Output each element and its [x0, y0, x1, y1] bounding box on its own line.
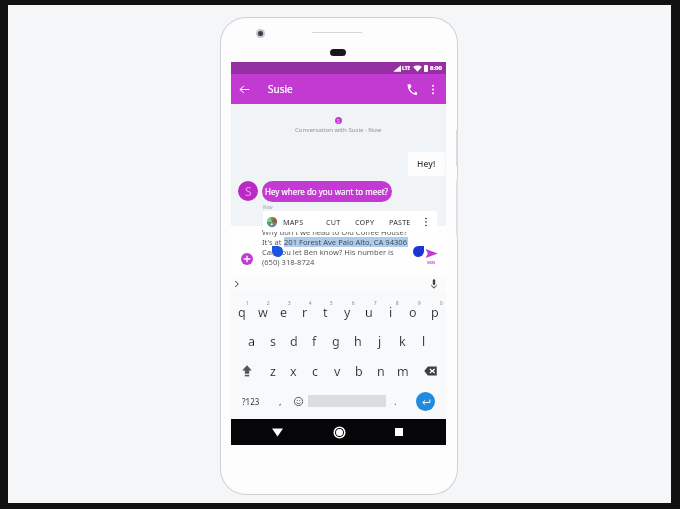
button[interactable]: Send SMS — [422, 248, 439, 268]
button[interactable]: ?123 — [231, 386, 271, 416]
button[interactable]: a — [241, 326, 262, 356]
button[interactable]: m — [392, 356, 414, 386]
staticText: 5 — [330, 300, 333, 306]
staticText: 9 — [418, 300, 421, 306]
staticText: l — [422, 333, 426, 350]
staticText: n — [377, 363, 385, 380]
staticText: f — [312, 333, 317, 350]
button[interactable]: . — [386, 386, 405, 416]
staticText: Hey where do you want to meet? — [265, 186, 389, 197]
button[interactable]: n — [370, 356, 392, 386]
staticText: 1 — [246, 300, 249, 306]
button[interactable]: COPY — [352, 211, 378, 232]
staticText: a — [248, 333, 256, 350]
button[interactable]: 2 — [252, 297, 273, 326]
button[interactable]: 0 — [424, 297, 446, 326]
staticText: S — [245, 183, 252, 199]
staticText: j — [378, 333, 382, 350]
staticText: t — [323, 304, 328, 321]
button[interactable]: , — [271, 386, 289, 416]
staticText: m — [397, 363, 409, 380]
button[interactable]: Enter — [405, 386, 446, 416]
staticText: Now — [263, 204, 273, 210]
button[interactable]: Backspace — [414, 356, 446, 386]
button[interactable]: Back — [231, 76, 257, 102]
button[interactable]: s — [262, 326, 283, 356]
button[interactable]: l — [413, 326, 435, 356]
staticText: MAPS — [283, 217, 304, 227]
button[interactable]: Home — [326, 419, 352, 445]
staticText: Conversation with Susie · Now — [295, 125, 382, 133]
staticText: d — [290, 333, 298, 350]
button[interactable]: Attach — [241, 253, 253, 265]
staticText: 7 — [374, 300, 377, 306]
button[interactable]: g — [325, 326, 347, 356]
button[interactable]: x — [283, 356, 304, 386]
staticText: o — [409, 304, 417, 321]
button[interactable]: 3 — [273, 297, 294, 326]
button[interactable]: Hey where do you want to meet? — [262, 181, 392, 202]
button[interactable]: 9 — [402, 297, 424, 326]
staticText: (650) 318-8724 — [262, 257, 315, 267]
staticText: q — [238, 304, 246, 321]
button[interactable]: z — [262, 356, 283, 386]
button[interactable]: Recents — [386, 419, 412, 445]
button[interactable]: Emoji — [289, 386, 308, 416]
staticText: LTE — [402, 65, 411, 72]
button[interactable]: 4 — [294, 297, 315, 326]
staticText: e — [280, 304, 288, 321]
staticText: u — [365, 304, 373, 321]
staticText: h — [354, 333, 362, 350]
staticText: 8 — [396, 300, 399, 306]
button[interactable]: b — [348, 356, 370, 386]
button[interactable]: 5 — [315, 297, 336, 326]
button[interactable]: j — [369, 326, 391, 356]
button[interactable]: h — [347, 326, 369, 356]
button[interactable]: More options — [423, 79, 443, 99]
button[interactable]: More options — [418, 214, 434, 230]
button[interactable]: 8 — [380, 297, 402, 326]
staticText: 201 Forest Ave Palo Alto, CA 94306 — [284, 237, 408, 247]
staticText: i — [389, 304, 393, 321]
staticText: Why don't we head to Old Coffee House? — [262, 227, 408, 237]
staticText: 4 — [309, 300, 312, 306]
staticText: 2 — [267, 300, 270, 306]
staticText: Hey! — [417, 158, 436, 170]
staticText: 0 — [440, 300, 443, 306]
button[interactable]: v — [326, 356, 348, 386]
staticText: CUT — [326, 217, 341, 227]
button[interactable]: MAPS — [263, 211, 308, 232]
button[interactable]: Call — [399, 77, 423, 101]
staticText: Susie — [268, 82, 293, 96]
staticText: Can you let Ben know? His number is — [262, 247, 394, 257]
staticText: S — [337, 118, 340, 124]
staticText: c — [312, 363, 319, 380]
staticText: PASTE — [389, 217, 411, 227]
button[interactable]: 6 — [336, 297, 358, 326]
staticText: w — [258, 304, 268, 321]
button[interactable]: f — [304, 326, 325, 356]
button[interactable]: Hey! — [408, 152, 445, 176]
button[interactable]: Shift — [231, 356, 262, 386]
staticText: 6 — [352, 300, 355, 306]
staticText: ?123 — [242, 396, 260, 407]
staticText: y — [344, 304, 351, 321]
staticText: p — [431, 304, 439, 321]
button[interactable]: CUT — [323, 211, 344, 232]
button[interactable]: k — [391, 326, 413, 356]
button[interactable]: Back — [264, 419, 290, 445]
staticText: x — [290, 363, 297, 380]
button[interactable]: c — [304, 356, 326, 386]
staticText: , — [279, 395, 282, 407]
staticText: k — [399, 333, 406, 350]
staticText: v — [334, 363, 341, 380]
button[interactable]: 1 — [231, 297, 252, 326]
staticText: SMS — [427, 260, 436, 265]
button[interactable]: PASTE — [386, 211, 414, 232]
staticText: 3 — [288, 300, 291, 306]
staticText: 8:00 — [430, 64, 442, 72]
button[interactable]: 7 — [358, 297, 380, 326]
button[interactable]: d — [283, 326, 304, 356]
staticText: . — [394, 395, 397, 407]
